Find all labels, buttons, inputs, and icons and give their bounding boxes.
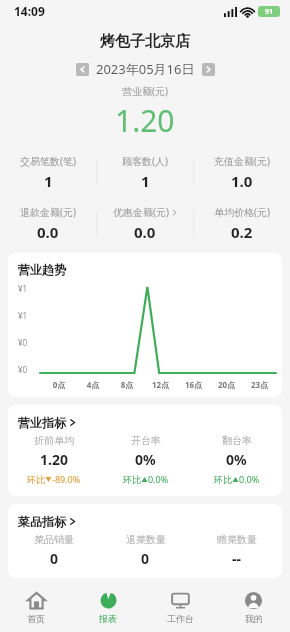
staticText: 1.20 <box>115 100 175 141</box>
staticText: 0.0% <box>148 473 169 485</box>
staticText: 翻台率 <box>222 434 252 447</box>
staticText: 0 <box>141 549 150 568</box>
staticText: 环比 <box>214 474 232 485</box>
staticText: 交易笔数(笔) <box>20 154 76 168</box>
button[interactable]: 开台率 <box>100 434 191 485</box>
staticText: 8点 <box>110 379 144 390</box>
button[interactable]: 交易笔数(笔) <box>0 152 96 192</box>
button[interactable]: 菜品指标 <box>8 504 282 533</box>
staticText: 91 <box>265 7 274 17</box>
staticText: 烤包子北京店 <box>100 32 190 51</box>
button[interactable]: 首页 <box>0 582 72 632</box>
staticText: 开台率 <box>131 434 161 447</box>
staticText: 充值金额(元) <box>214 154 270 168</box>
staticText: 0.2 <box>231 222 253 242</box>
staticText: ¥1 <box>18 310 28 321</box>
staticText: 营业额(元) <box>122 84 168 98</box>
staticText: 首页 <box>27 613 45 624</box>
staticText: 我的 <box>245 613 263 624</box>
staticText: 1.20 <box>40 450 68 469</box>
button[interactable]: 顾客数(人) <box>97 152 193 192</box>
button[interactable]: 退菜数量 <box>100 533 191 568</box>
staticText: 0% <box>135 450 156 469</box>
staticText: 优惠金额(元) <box>113 205 169 219</box>
staticText: 1 <box>44 171 53 191</box>
staticText: 营业指标 <box>18 415 66 430</box>
staticText: -89.0% <box>52 473 81 485</box>
button[interactable]: 赠菜数量 <box>191 533 282 568</box>
button[interactable]: 单均价格(元) <box>194 203 290 243</box>
staticText: 顾客数(人) <box>122 154 168 168</box>
staticText: 折前单均 <box>34 434 74 447</box>
staticText: 20点 <box>210 379 243 390</box>
staticText: 菜品销量 <box>34 533 74 546</box>
staticText: 23点 <box>243 379 276 390</box>
staticText: 0.0 <box>37 222 59 242</box>
button[interactable]: 充值金额(元) <box>194 152 290 192</box>
staticText: 工作台 <box>167 613 194 624</box>
staticText: 营业趋势 <box>18 262 66 277</box>
staticText: ¥1 <box>18 283 28 294</box>
staticText: 0.0 <box>134 222 156 242</box>
staticText: 菜品指标 <box>18 514 66 529</box>
staticText: ¥0 <box>18 364 28 375</box>
button[interactable]: 工作台 <box>144 582 217 632</box>
staticText: 12点 <box>144 379 177 390</box>
button[interactable]: 营业指标 <box>8 405 282 434</box>
staticText: 16点 <box>177 379 210 390</box>
staticText: 赠菜数量 <box>217 533 257 546</box>
button[interactable]: 优惠金额(元) <box>97 203 193 243</box>
button[interactable]: 菜品销量 <box>8 533 100 568</box>
button[interactable]: 翻台率 <box>191 434 282 485</box>
button[interactable]: 折前单均 <box>8 434 100 485</box>
staticText: 1 <box>141 171 150 191</box>
staticText: 0 <box>50 549 59 568</box>
button[interactable]: Previous day <box>76 63 89 76</box>
staticText: 0点 <box>42 379 76 390</box>
staticText: 退菜数量 <box>126 533 166 546</box>
staticText: 报表 <box>99 613 117 624</box>
button[interactable]: 报表 <box>72 582 144 632</box>
staticText: 单均价格(元) <box>214 205 270 219</box>
staticText: 4点 <box>76 379 110 390</box>
button[interactable]: Next day <box>202 63 215 76</box>
staticText: 14:09 <box>14 3 45 19</box>
button[interactable]: 退款金额(元) <box>0 203 96 243</box>
staticText: 1.0 <box>231 171 253 191</box>
staticText: -- <box>232 549 241 568</box>
staticText: 退款金额(元) <box>20 205 76 219</box>
staticText: ¥0 <box>18 337 28 348</box>
staticText: 2023年05月16日 <box>96 60 195 78</box>
staticText: 环比 <box>123 474 141 485</box>
staticText: 0.0% <box>239 473 260 485</box>
staticText: 0% <box>226 450 247 469</box>
button[interactable]: 我的 <box>217 582 290 632</box>
staticText: 环比 <box>27 474 45 485</box>
